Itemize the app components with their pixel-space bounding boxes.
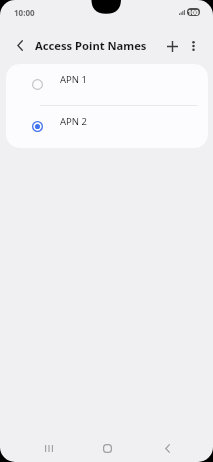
staticText: 10:00: [14, 7, 35, 18]
button[interactable]: APN 2: [6, 105, 208, 147]
button[interactable]: Navigate up: [8, 34, 31, 57]
button[interactable]: Home: [95, 432, 120, 462]
button[interactable]: APN 1: [6, 64, 208, 105]
staticText: APN 2: [60, 115, 87, 128]
button[interactable]: More options: [181, 34, 205, 58]
button[interactable]: Add: [160, 34, 184, 58]
button[interactable]: Back: [155, 432, 180, 462]
staticText: Access Point Names: [35, 38, 147, 53]
staticText: APN 1: [60, 73, 87, 86]
staticText: 100: [188, 8, 199, 16]
button[interactable]: Recent apps: [36, 432, 61, 462]
